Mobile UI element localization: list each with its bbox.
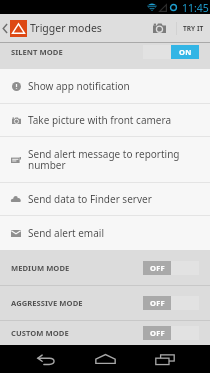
button[interactable]: SILENT MODE	[0, 43, 210, 69]
button[interactable]: Send data to Finder server	[0, 183, 210, 215]
staticText: Trigger modes	[30, 21, 102, 35]
button[interactable]: Show app notification	[0, 69, 210, 103]
staticText: 11:45	[182, 1, 209, 15]
button[interactable]: Camera	[150, 14, 176, 42]
staticText: Send data to Finder server	[28, 192, 152, 206]
button[interactable]: MEDIUM MODE	[0, 250, 210, 285]
button[interactable]: Take picture with front camera	[0, 104, 210, 136]
staticText: Send alert email	[28, 226, 104, 240]
staticText: Take picture with front camera	[28, 113, 172, 127]
button[interactable]: Home	[85, 345, 125, 373]
staticText: ON	[179, 47, 192, 57]
button[interactable]: Back	[26, 345, 66, 373]
button[interactable]: Send alert email	[0, 216, 210, 250]
staticText: OFF	[150, 263, 165, 273]
button[interactable]: Recent apps	[145, 345, 185, 373]
button[interactable]: Up	[0, 20, 27, 37]
button[interactable]: AGGRESSIVE MODE	[0, 286, 210, 320]
staticText: Send alert message to reporting number	[28, 147, 180, 172]
button[interactable]: TRY IT	[177, 14, 210, 42]
staticText: Show app notification	[28, 79, 130, 93]
staticText: CUSTOM MODE	[11, 328, 69, 338]
staticText: MEDIUM MODE	[11, 263, 70, 273]
staticText: OFF	[150, 328, 165, 338]
staticText: TRY IT	[183, 24, 204, 33]
staticText: OFF	[150, 298, 165, 308]
staticText: AGGRESSIVE MODE	[11, 298, 83, 308]
staticText: SILENT MODE	[11, 47, 63, 57]
button[interactable]: Send alert message to reporting number	[0, 137, 210, 182]
button[interactable]: CUSTOM MODE	[0, 321, 210, 345]
